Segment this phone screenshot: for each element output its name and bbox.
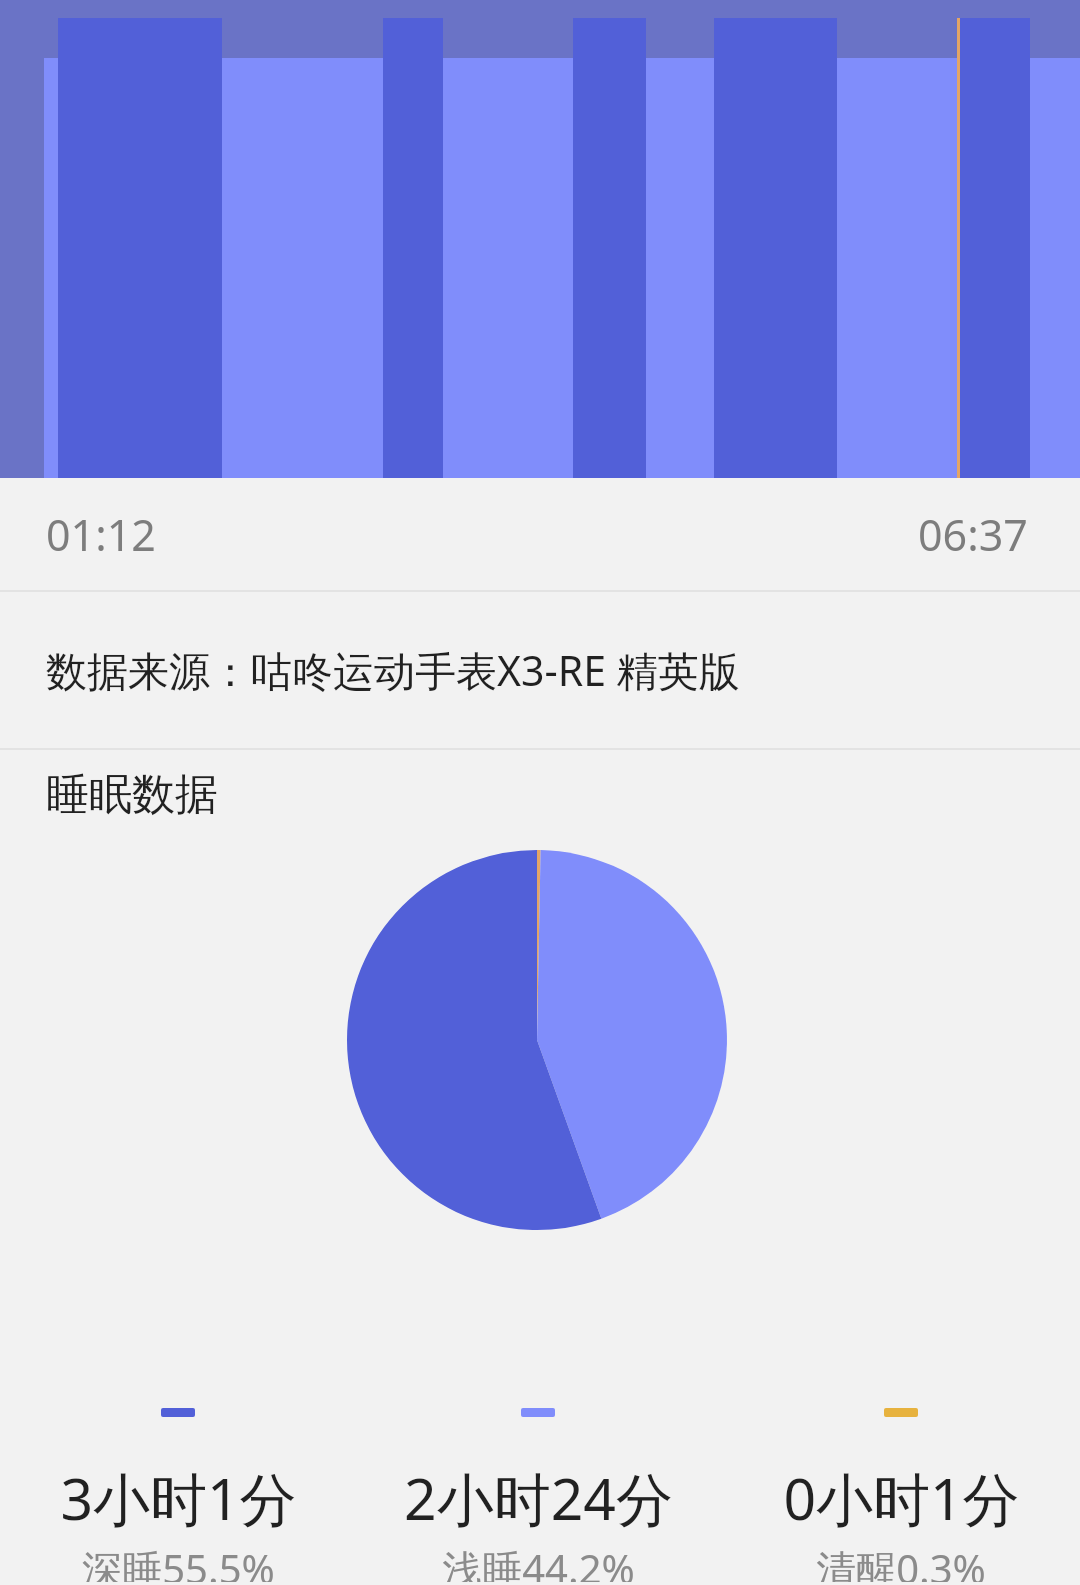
- staticText: 06:37: [918, 505, 1028, 564]
- button[interactable]: Sleep stage timeline chart: [0, 0, 1080, 478]
- staticText: 清醒0.3%: [816, 1541, 986, 1582]
- button[interactable]: 0小时1分: [731, 1382, 1071, 1582]
- button[interactable]: 3小时1分: [8, 1382, 348, 1582]
- button[interactable]: 数据来源：咕咚运动手表X3-RE 精英版: [0, 592, 1080, 748]
- staticText: 睡眠数据: [46, 768, 218, 822]
- staticText: 0小时1分: [783, 1459, 1020, 1537]
- staticText: 2小时24分: [404, 1459, 673, 1537]
- staticText: 3小时1分: [60, 1459, 297, 1537]
- button[interactable]: Sleep composition pie chart: [0, 840, 1080, 1382]
- staticText: 深睡55.5%: [82, 1541, 275, 1582]
- staticText: 浅睡44.2%: [442, 1541, 635, 1582]
- button[interactable]: 2小时24分: [368, 1382, 708, 1582]
- staticText: 数据来源：咕咚运动手表X3-RE 精英版: [46, 642, 740, 698]
- staticText: 01:12: [46, 505, 156, 564]
